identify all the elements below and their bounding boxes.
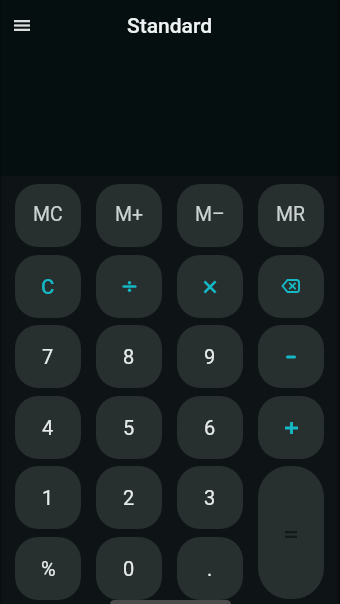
button[interactable]: MR (258, 184, 324, 247)
staticText: 5 (123, 416, 135, 439)
button[interactable]: 9 (177, 325, 243, 388)
button[interactable]: Divide (96, 255, 162, 318)
staticText: 8 (123, 345, 135, 368)
button[interactable]: 5 (96, 396, 162, 459)
staticText: 3 (204, 486, 216, 509)
staticText: 4 (42, 416, 54, 439)
button[interactable]: C (15, 255, 81, 318)
button[interactable]: M+ (96, 184, 162, 247)
button[interactable]: 0 (96, 537, 162, 600)
button[interactable]: 3 (177, 466, 243, 529)
staticText: C (41, 275, 55, 299)
button[interactable]: Menu (2, 5, 42, 45)
button[interactable]: Minus (258, 325, 324, 388)
button[interactable]: 2 (96, 466, 162, 529)
staticText: MC (33, 203, 63, 226)
button[interactable]: Plus (258, 396, 324, 459)
button[interactable]: M– (177, 184, 243, 247)
staticText: 2 (123, 486, 135, 509)
button[interactable]: . (177, 537, 243, 600)
staticText: MR (276, 203, 306, 226)
button[interactable]: 8 (96, 325, 162, 388)
staticText: % (41, 557, 56, 580)
button[interactable]: 4 (15, 396, 81, 459)
staticText: 0 (123, 557, 135, 580)
staticText: 1 (42, 486, 54, 509)
button[interactable]: MC (15, 184, 81, 247)
staticText: M– (195, 203, 225, 226)
staticText: . (207, 557, 213, 580)
button[interactable]: 1 (15, 466, 81, 529)
staticText: 9 (204, 345, 216, 368)
staticText: M+ (115, 203, 144, 226)
staticText: Standard (127, 14, 213, 39)
button[interactable]: Equals (258, 466, 324, 599)
button[interactable]: Backspace (258, 255, 324, 318)
staticText: 6 (204, 416, 216, 439)
button[interactable]: Multiply (177, 255, 243, 318)
staticText: 7 (42, 345, 54, 368)
button[interactable]: 7 (15, 325, 81, 388)
button[interactable]: % (15, 537, 81, 600)
button[interactable]: 6 (177, 396, 243, 459)
